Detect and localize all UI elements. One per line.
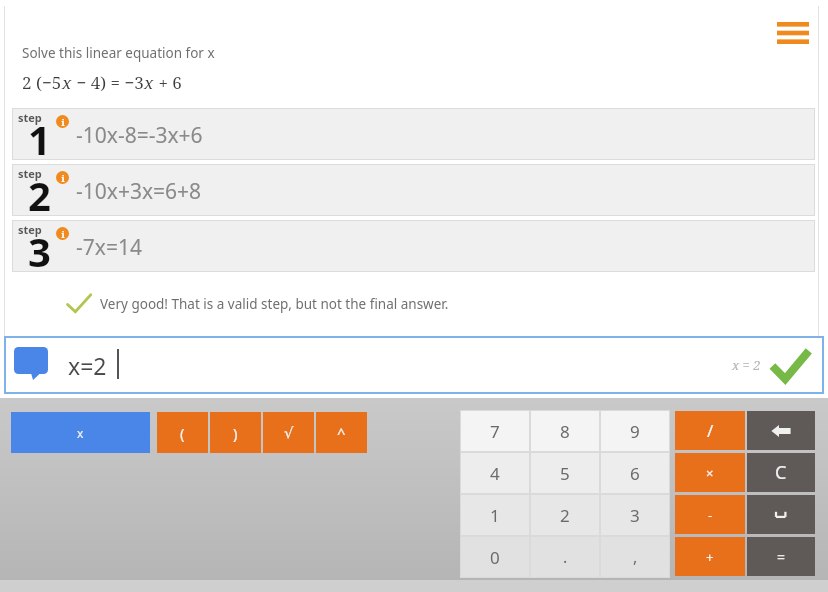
staticText: × — [706, 464, 714, 482]
button[interactable]: x=2 — [4, 336, 824, 394]
staticText: 2 — [560, 504, 570, 527]
button[interactable]: . — [531, 537, 599, 577]
button[interactable]: = — [747, 537, 815, 576]
staticText: C — [775, 460, 787, 485]
staticText: ^ — [337, 423, 346, 443]
button[interactable]: step — [12, 108, 815, 160]
staticText: x — [62, 71, 72, 94]
staticText: 9 — [630, 420, 640, 443]
staticText: x — [144, 71, 154, 94]
staticText: . — [563, 546, 568, 568]
button[interactable]: - — [675, 495, 745, 534]
button[interactable]: , — [601, 537, 669, 577]
button[interactable]: ( — [157, 412, 208, 453]
staticText: = — [777, 547, 786, 566]
button[interactable]: x — [11, 412, 150, 453]
staticText: i — [61, 172, 65, 184]
staticText: step — [18, 222, 42, 237]
button[interactable]: × — [675, 453, 745, 492]
staticText: 1 — [490, 504, 500, 527]
button[interactable]: Step info — [56, 227, 69, 240]
staticText: 3 — [630, 504, 640, 527]
button[interactable]: 0 — [461, 537, 529, 577]
staticText: ( — [180, 423, 185, 443]
button[interactable]: 6 — [601, 453, 669, 493]
button[interactable]: C — [747, 453, 815, 492]
staticText: + — [706, 548, 714, 566]
button[interactable]: 3 — [601, 495, 669, 535]
staticText: + 6 — [154, 71, 182, 94]
staticText: 7 — [490, 420, 500, 443]
staticText: Solve this linear equation for x — [22, 44, 215, 62]
button[interactable]: + — [675, 537, 745, 576]
staticText: i — [61, 228, 65, 240]
button[interactable]: ^ — [316, 412, 367, 453]
staticText: - — [708, 506, 713, 524]
staticText: 5 — [560, 462, 570, 485]
button[interactable]: step — [12, 164, 815, 216]
button[interactable]: √ — [263, 412, 314, 453]
staticText: Very good! That is a valid step, but not… — [100, 295, 449, 313]
staticText: 4 — [490, 462, 500, 485]
staticText: , — [633, 546, 638, 568]
staticText: 0 — [490, 546, 500, 569]
staticText: step — [18, 166, 42, 181]
staticText: -10x+3x=6+8 — [76, 177, 202, 206]
button[interactable]: Step info — [56, 115, 69, 128]
staticText: ) — [233, 423, 238, 443]
button[interactable]: 7 — [461, 411, 529, 451]
button[interactable]: 8 — [531, 411, 599, 451]
staticText: 2 — [28, 168, 51, 220]
staticText: x=2 — [68, 350, 107, 381]
button[interactable]: Backspace — [747, 411, 815, 450]
button[interactable]: 5 — [531, 453, 599, 493]
staticText: 3 — [28, 224, 51, 276]
button[interactable]: ) — [210, 412, 261, 453]
staticText: / — [707, 419, 714, 442]
button[interactable]: Step info — [56, 171, 69, 184]
staticText: 6 — [630, 462, 640, 485]
button[interactable]: Menu — [770, 14, 816, 52]
staticText: −5 — [42, 71, 62, 94]
button[interactable]: 2 — [531, 495, 599, 535]
staticText: i — [61, 116, 65, 128]
button[interactable]: 4 — [461, 453, 529, 493]
button[interactable]: 1 — [461, 495, 529, 535]
staticText: √ — [284, 424, 294, 441]
staticText: 8 — [560, 420, 570, 443]
staticText: x = 2 — [732, 356, 761, 374]
button[interactable]: / — [675, 411, 745, 450]
staticText: -10x-8=-3x+6 — [76, 121, 203, 150]
staticText: 2 ( — [22, 71, 42, 94]
button[interactable]: step — [12, 220, 815, 272]
staticText: x — [77, 425, 84, 441]
staticText: 1 — [28, 112, 51, 164]
staticText: -7x=14 — [76, 233, 142, 262]
staticText: step — [18, 110, 42, 125]
button[interactable]: Enter — [747, 495, 815, 534]
button[interactable]: 9 — [601, 411, 669, 451]
staticText: − 4) = −3 — [72, 71, 144, 94]
